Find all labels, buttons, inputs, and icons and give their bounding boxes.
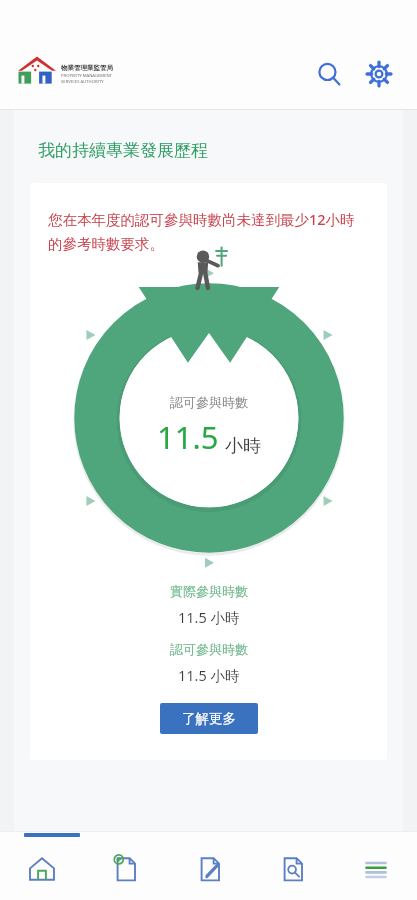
staticText: PROPERTY MANAGEMENT	[61, 73, 112, 79]
staticText: 11.5 小時	[178, 607, 240, 627]
button[interactable]: Search	[307, 52, 351, 96]
button[interactable]: 了解更多	[160, 703, 258, 734]
staticText: 我的持續專業發展歷程	[38, 140, 208, 161]
staticText: SERVICES AUTHORITY	[61, 79, 104, 85]
staticText: 您在本年度的認可參與時數尚未達到最少12小時的參考時數要求。	[48, 209, 369, 253]
staticText: 11.5	[157, 416, 219, 458]
button[interactable]: Menu	[334, 838, 417, 900]
staticText: 小時	[225, 435, 261, 458]
button[interactable]: Home	[0, 838, 84, 900]
staticText: 實際參與時數	[170, 583, 248, 599]
button[interactable]: Settings	[357, 52, 401, 96]
button[interactable]: Add document	[84, 838, 168, 900]
staticText: 了解更多	[182, 710, 236, 727]
staticText: 認可參與時數	[170, 394, 248, 410]
staticText: 11.5 小時	[178, 665, 240, 685]
staticText: 物業管理業監管局	[61, 64, 113, 72]
button[interactable]: Search document	[251, 838, 334, 900]
staticText: 認可參與時數	[170, 641, 248, 657]
button[interactable]: Edit document	[168, 838, 251, 900]
